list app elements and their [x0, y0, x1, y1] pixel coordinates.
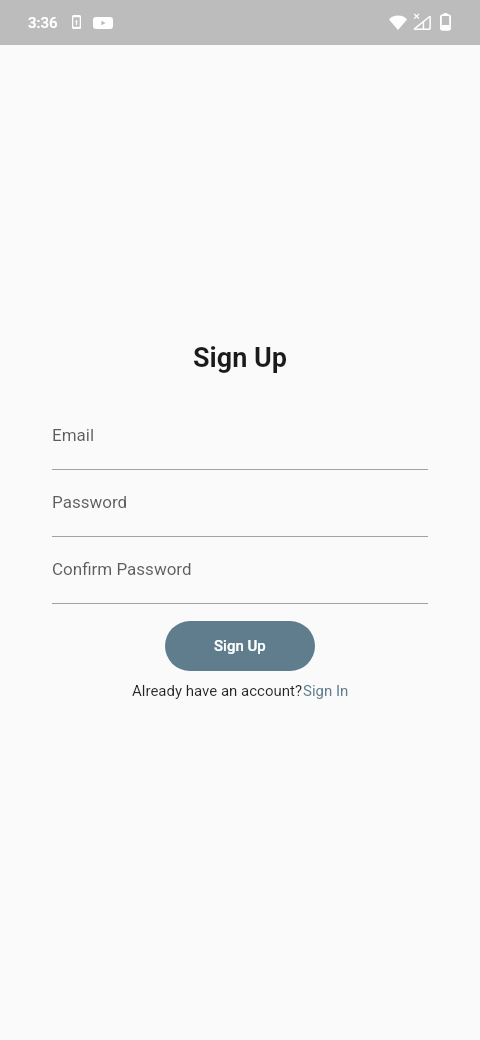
staticText: 3:36 — [28, 14, 58, 32]
other: Battery — [440, 13, 451, 31]
other: YouTube — [93, 17, 113, 29]
button[interactable]: Confirm Password — [52, 557, 428, 603]
staticText: Sign Up — [214, 637, 266, 655]
staticText: Sign Up — [193, 342, 288, 374]
staticText: Password — [52, 492, 128, 512]
button[interactable]: Sign Up — [165, 621, 315, 671]
other: No SIM card — [413, 14, 431, 30]
other: Wi-Fi — [389, 15, 407, 30]
staticText: Sign In — [303, 682, 349, 700]
button[interactable]: Password — [52, 490, 428, 536]
other: Vibrate mode — [72, 15, 81, 29]
staticText: Email — [52, 425, 95, 445]
button[interactable]: Email — [52, 423, 428, 469]
button[interactable]: Sign In — [303, 682, 349, 700]
staticText: Confirm Password — [52, 559, 192, 579]
staticText: Already have an account? — [132, 682, 303, 700]
